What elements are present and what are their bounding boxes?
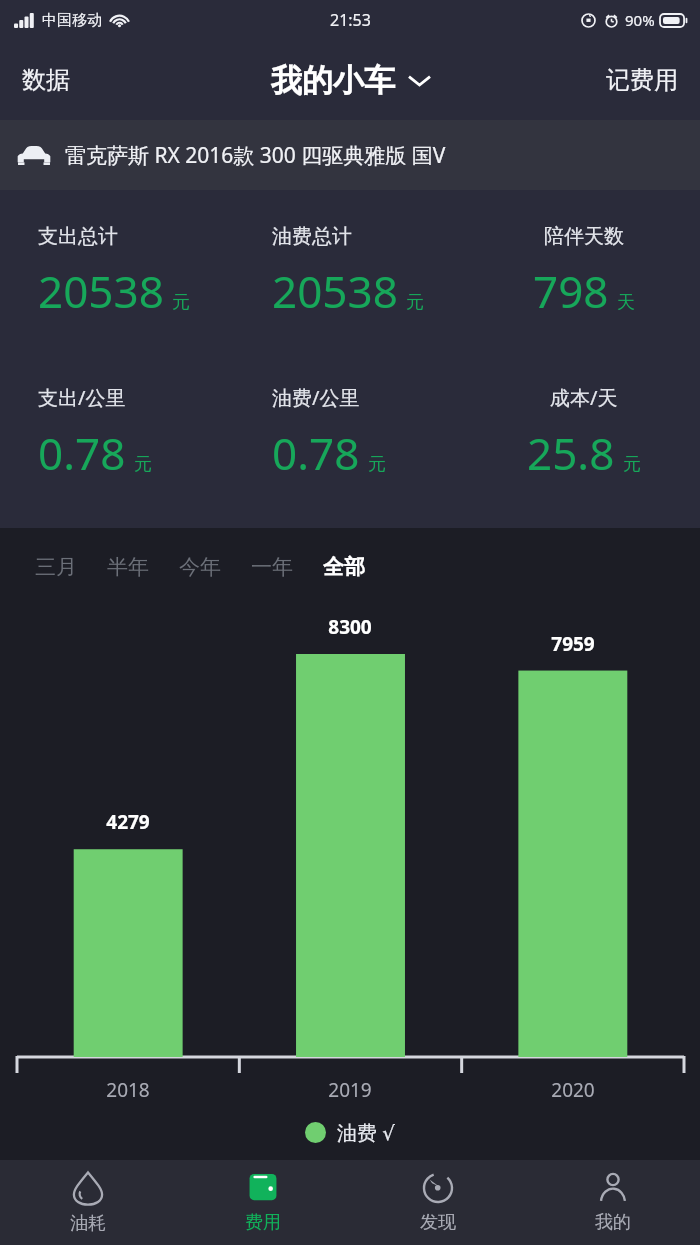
- button[interactable]: 记费用: [584, 49, 700, 111]
- staticText: 油费 √: [337, 1119, 395, 1146]
- staticText: 记费用: [606, 65, 678, 95]
- button[interactable]: 雷克萨斯 RX 2016款 300 四驱典雅版 国V: [0, 120, 700, 190]
- staticText: 雷克萨斯 RX 2016款 300 四驱典雅版 国V: [65, 141, 446, 170]
- staticText: 费用: [245, 1211, 281, 1234]
- button[interactable]: 费用: [175, 1160, 350, 1245]
- staticText: 20538: [38, 261, 164, 321]
- staticText: 798: [533, 261, 609, 321]
- staticText: 元: [172, 291, 190, 314]
- staticText: 油费/公里: [272, 384, 360, 411]
- staticText: 8300: [328, 614, 372, 640]
- staticText: 支出总计: [38, 224, 118, 249]
- button[interactable]: 我的小车: [261, 53, 440, 108]
- staticText: 25.8: [527, 423, 615, 483]
- button[interactable]: 全部: [308, 546, 380, 588]
- button[interactable]: 一年: [236, 546, 308, 588]
- staticText: 元: [134, 453, 152, 476]
- staticText: 2019: [328, 1077, 372, 1103]
- button[interactable]: 我的: [525, 1160, 700, 1245]
- staticText: 0.78: [38, 423, 126, 483]
- staticText: 油耗: [70, 1212, 106, 1235]
- staticText: 陪伴天数: [544, 224, 624, 249]
- staticText: 元: [368, 453, 386, 476]
- staticText: 我的小车: [271, 61, 395, 100]
- staticText: 元: [406, 291, 424, 314]
- staticText: 元: [623, 453, 641, 476]
- staticText: 20538: [272, 261, 398, 321]
- staticText: 中国移动: [42, 11, 102, 30]
- staticText: 全部: [323, 554, 365, 580]
- staticText: 今年: [179, 554, 221, 580]
- button[interactable]: 发现: [350, 1160, 525, 1245]
- button[interactable]: 三月: [20, 546, 92, 588]
- staticText: 数据: [22, 65, 70, 95]
- staticText: 油费总计: [272, 224, 352, 249]
- staticText: 4279: [106, 809, 150, 835]
- staticText: 天: [617, 291, 635, 314]
- staticText: 发现: [420, 1211, 456, 1234]
- button[interactable]: 今年: [164, 546, 236, 588]
- button[interactable]: 油耗: [0, 1160, 175, 1245]
- staticText: 2020: [551, 1077, 595, 1103]
- button[interactable]: 数据: [0, 49, 92, 111]
- staticText: 三月: [35, 554, 77, 580]
- staticText: 半年: [107, 554, 149, 580]
- staticText: 成本/天: [550, 384, 618, 411]
- staticText: 90%: [625, 10, 655, 30]
- staticText: 7959: [551, 631, 595, 657]
- staticText: 支出/公里: [38, 384, 126, 411]
- staticText: 一年: [251, 554, 293, 580]
- button[interactable]: 半年: [92, 546, 164, 588]
- staticText: 21:53: [330, 9, 371, 31]
- staticText: 我的: [595, 1211, 631, 1234]
- staticText: 0.78: [272, 423, 360, 483]
- staticText: 2018: [106, 1077, 150, 1103]
